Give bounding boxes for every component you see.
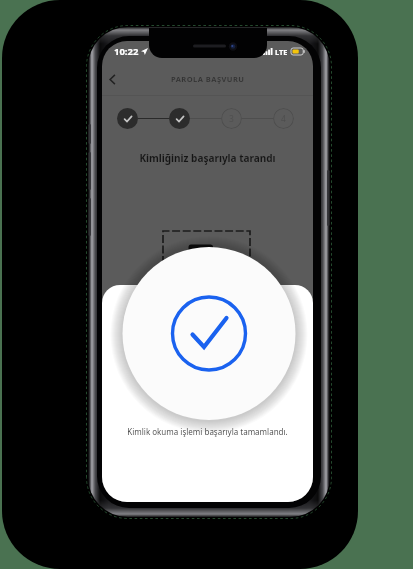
button[interactable]: Step 2 completed (169, 108, 190, 129)
staticText: LTE (275, 47, 288, 57)
staticText: 10:22 (114, 45, 139, 58)
button[interactable]: Step 3 (221, 108, 242, 129)
button[interactable]: Step 4 (273, 108, 294, 129)
staticText: PAROLA BAŞVURU (171, 74, 245, 84)
staticText: 3 (229, 113, 234, 125)
staticText: Kimliğiniz başarıyla tarandı (102, 151, 313, 165)
button[interactable]: Back (102, 69, 122, 89)
button[interactable]: Step 1 completed (117, 108, 138, 129)
staticText: 4 (281, 113, 286, 125)
staticText: Kimlik okuma işlemi başarıyla tamamlandı… (102, 426, 313, 437)
